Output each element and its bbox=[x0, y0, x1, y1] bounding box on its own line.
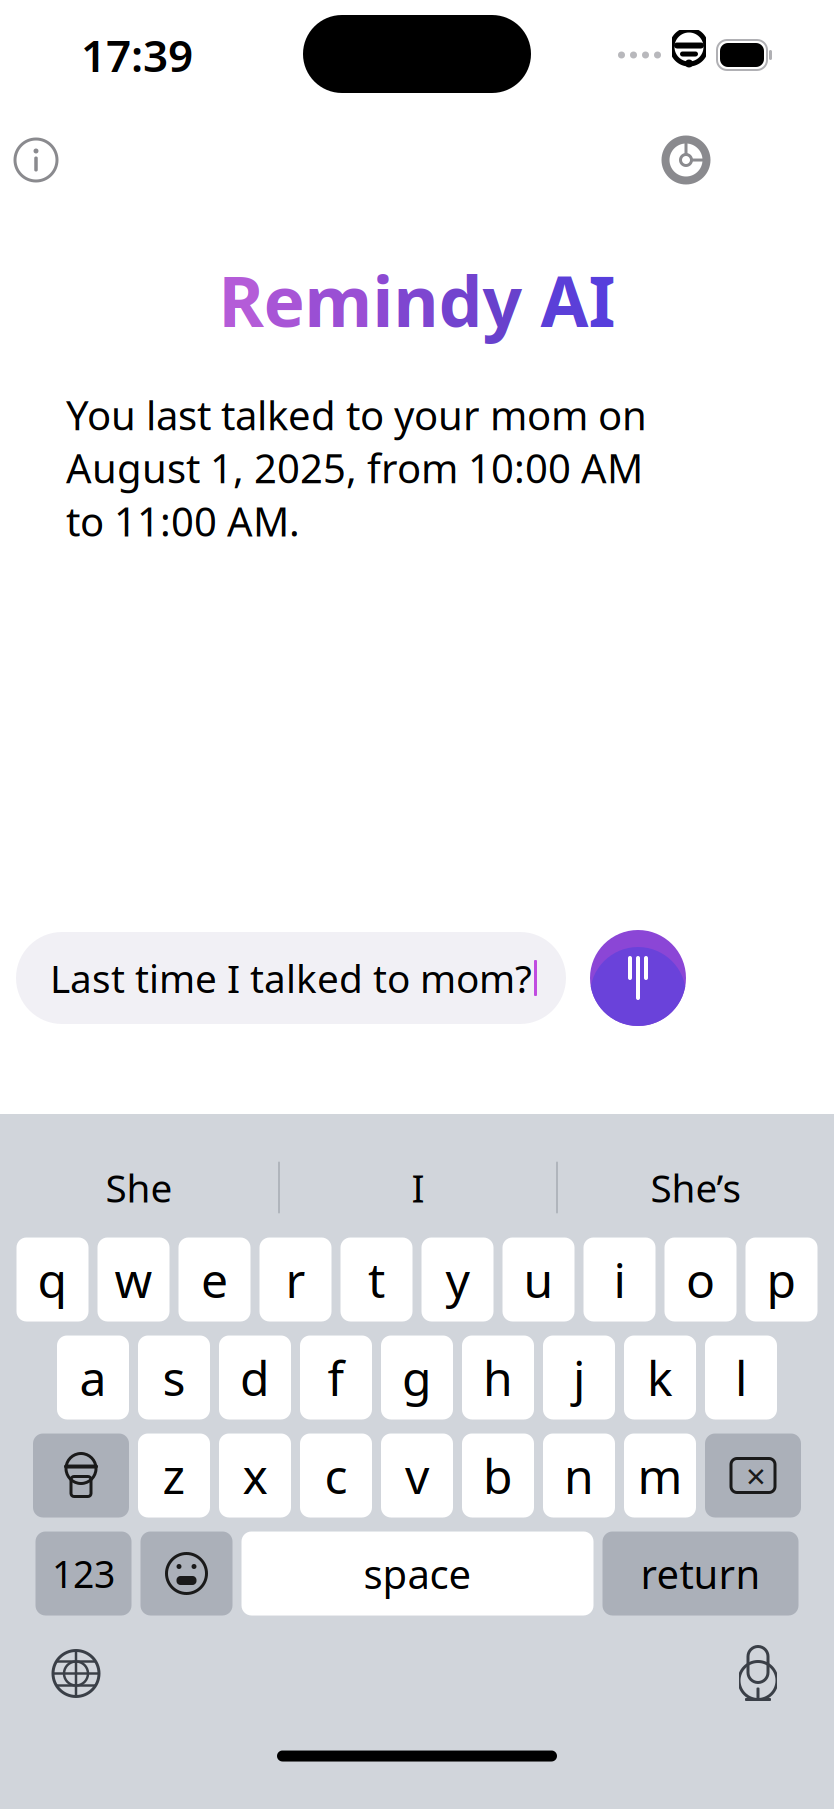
staticText: She bbox=[105, 1162, 172, 1213]
button[interactable]: Last time I talked to mom? bbox=[16, 932, 566, 1024]
button[interactable]: k bbox=[624, 1335, 696, 1419]
staticText: z bbox=[162, 1444, 185, 1507]
staticText: e bbox=[263, 254, 304, 346]
button[interactable]: p bbox=[745, 1237, 817, 1321]
button[interactable]: z bbox=[138, 1433, 210, 1517]
staticText: k bbox=[647, 1346, 673, 1409]
button[interactable]: Settings bbox=[654, 128, 718, 192]
button[interactable]: t bbox=[340, 1237, 412, 1321]
staticText: u bbox=[523, 1248, 553, 1311]
staticText: h bbox=[483, 1346, 513, 1409]
button[interactable]: l bbox=[705, 1335, 777, 1419]
button[interactable]: e bbox=[178, 1237, 250, 1321]
button[interactable]: o bbox=[664, 1237, 736, 1321]
button[interactable]: Send bbox=[590, 930, 686, 1026]
button[interactable]: x bbox=[219, 1433, 291, 1517]
staticText: t bbox=[368, 1248, 385, 1311]
staticText: Last time I talked to mom? bbox=[50, 952, 532, 1004]
button[interactable]: w bbox=[97, 1237, 169, 1321]
button[interactable]: space bbox=[241, 1531, 593, 1615]
staticText: return bbox=[640, 1547, 760, 1600]
staticText: o bbox=[686, 1248, 715, 1311]
button[interactable]: y bbox=[421, 1237, 493, 1321]
staticText: d bbox=[438, 254, 482, 346]
button[interactable]: She’s bbox=[558, 1156, 834, 1218]
staticText: i bbox=[372, 254, 393, 346]
staticText: space bbox=[363, 1547, 471, 1600]
staticText: q bbox=[37, 1248, 67, 1311]
staticText: m bbox=[304, 254, 372, 346]
staticText: She’s bbox=[650, 1162, 741, 1213]
staticText: s bbox=[162, 1346, 185, 1409]
button[interactable]: Shift bbox=[33, 1433, 129, 1517]
staticText: m bbox=[637, 1444, 682, 1507]
button[interactable]: Next keyboard bbox=[40, 1637, 112, 1709]
staticText: p bbox=[766, 1248, 796, 1311]
staticText: y bbox=[482, 254, 522, 346]
button[interactable]: She bbox=[0, 1156, 278, 1218]
button[interactable]: 123 bbox=[35, 1531, 131, 1615]
button[interactable]: u bbox=[502, 1237, 574, 1321]
button[interactable]: s bbox=[138, 1335, 210, 1419]
button[interactable]: f bbox=[300, 1335, 372, 1419]
staticText: n bbox=[393, 254, 438, 346]
staticText: g bbox=[402, 1346, 432, 1409]
button[interactable]: v bbox=[381, 1433, 453, 1517]
button[interactable]: m bbox=[624, 1433, 696, 1517]
button[interactable]: I bbox=[280, 1156, 556, 1218]
staticText: 123 bbox=[52, 1549, 115, 1598]
staticText: c bbox=[324, 1444, 347, 1507]
staticText: w bbox=[114, 1248, 152, 1311]
staticText: I bbox=[588, 254, 615, 346]
button[interactable]: Emoji bbox=[140, 1531, 232, 1615]
staticText: d bbox=[240, 1346, 270, 1409]
staticText: a bbox=[79, 1346, 106, 1409]
staticText: n bbox=[564, 1444, 594, 1507]
button[interactable]: r bbox=[259, 1237, 331, 1321]
button[interactable]: i bbox=[583, 1237, 655, 1321]
staticText: R bbox=[218, 254, 263, 346]
staticText: l bbox=[735, 1346, 747, 1409]
staticText: i bbox=[613, 1248, 625, 1311]
staticText: 17:39 bbox=[81, 26, 193, 84]
button[interactable]: g bbox=[381, 1335, 453, 1419]
button[interactable]: Delete bbox=[705, 1433, 801, 1517]
staticText: × bbox=[746, 1452, 766, 1498]
button[interactable]: h bbox=[462, 1335, 534, 1419]
staticText: A bbox=[540, 254, 588, 346]
staticText: x bbox=[242, 1444, 267, 1507]
button[interactable]: Dictation bbox=[722, 1637, 794, 1709]
staticText: f bbox=[327, 1346, 344, 1409]
button[interactable]: return bbox=[602, 1531, 798, 1615]
button[interactable]: Information bbox=[4, 128, 68, 192]
staticText: v bbox=[405, 1444, 429, 1507]
button[interactable]: c bbox=[300, 1433, 372, 1517]
staticText: j bbox=[573, 1346, 585, 1409]
staticText: e bbox=[201, 1248, 228, 1311]
staticText: You last talked to your mom on August 1,… bbox=[66, 388, 647, 547]
button[interactable]: d bbox=[219, 1335, 291, 1419]
button[interactable]: b bbox=[462, 1433, 534, 1517]
staticText: y bbox=[445, 1248, 469, 1311]
staticText: r bbox=[285, 1248, 305, 1311]
button[interactable]: a bbox=[57, 1335, 129, 1419]
button[interactable]: q bbox=[16, 1237, 88, 1321]
staticText: b bbox=[483, 1444, 513, 1507]
button[interactable]: n bbox=[543, 1433, 615, 1517]
button[interactable]: j bbox=[543, 1335, 615, 1419]
staticText: I bbox=[411, 1162, 424, 1213]
